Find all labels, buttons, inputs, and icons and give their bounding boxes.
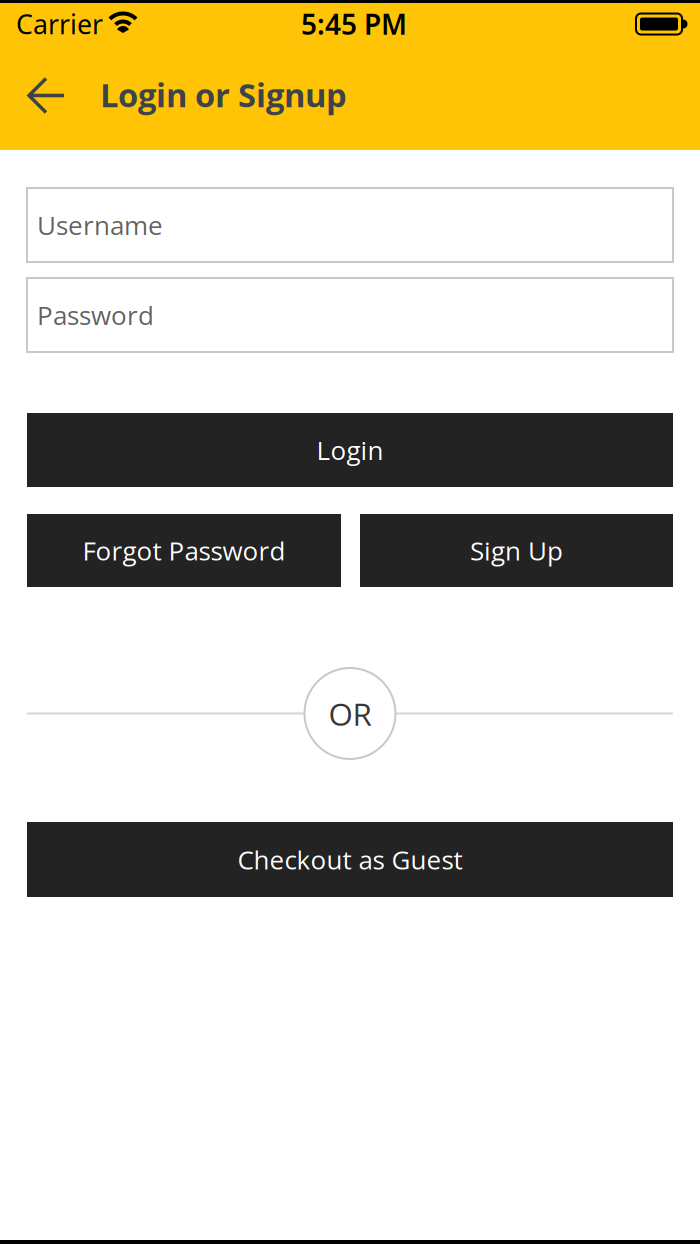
textField[interactable]: Password (27, 278, 673, 352)
staticText: Username (37, 207, 163, 243)
staticText: 5:45 PM (301, 5, 407, 43)
staticText: Login or Signup (100, 72, 347, 117)
staticText: Checkout as Guest (237, 842, 462, 877)
staticText: Sign Up (470, 533, 563, 568)
staticText: Password (37, 297, 154, 333)
button[interactable]: Login (27, 413, 673, 487)
button[interactable]: Back (0, 78, 65, 116)
textField[interactable]: Username (27, 188, 673, 262)
button[interactable]: Sign Up (360, 514, 673, 587)
staticText: Forgot Password (82, 533, 285, 568)
staticText: OR (328, 692, 371, 735)
staticText: Carrier (16, 6, 103, 42)
staticText: Login (316, 432, 383, 468)
button[interactable]: Checkout as Guest (27, 822, 673, 897)
button[interactable]: Forgot Password (27, 514, 341, 587)
